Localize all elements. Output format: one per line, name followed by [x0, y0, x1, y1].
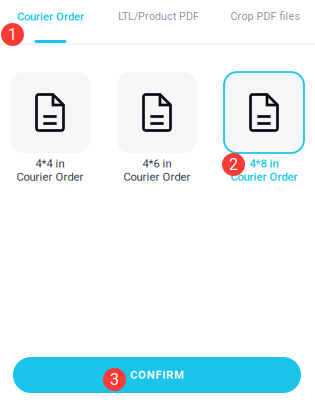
- button[interactable]: CONFIRM: [13, 357, 301, 393]
- staticText: 1: [8, 25, 17, 44]
- staticText: 4*4 in: [35, 157, 64, 170]
- staticText: 4*6 in: [142, 157, 171, 170]
- staticText: Courier Order: [17, 10, 84, 23]
- staticText: 4*8 in: [249, 157, 278, 170]
- button[interactable]: 4*6 in: [117, 72, 197, 184]
- button[interactable]: LTL/Product PDF: [101, 0, 216, 43]
- button[interactable]: Courier Order: [0, 0, 101, 43]
- staticText: Crop PDF files: [230, 10, 300, 22]
- button[interactable]: Crop PDF files: [216, 0, 315, 43]
- staticText: Courier Order: [16, 170, 83, 184]
- button[interactable]: 4*8 in: [224, 72, 304, 184]
- staticText: 3: [110, 370, 119, 389]
- staticText: Courier Order: [230, 170, 297, 184]
- staticText: CONFIRM: [130, 368, 184, 382]
- staticText: LTL/Product PDF: [118, 10, 199, 22]
- staticText: Courier Order: [123, 170, 190, 184]
- button[interactable]: 4*4 in: [10, 72, 90, 184]
- staticText: 2: [229, 155, 238, 174]
